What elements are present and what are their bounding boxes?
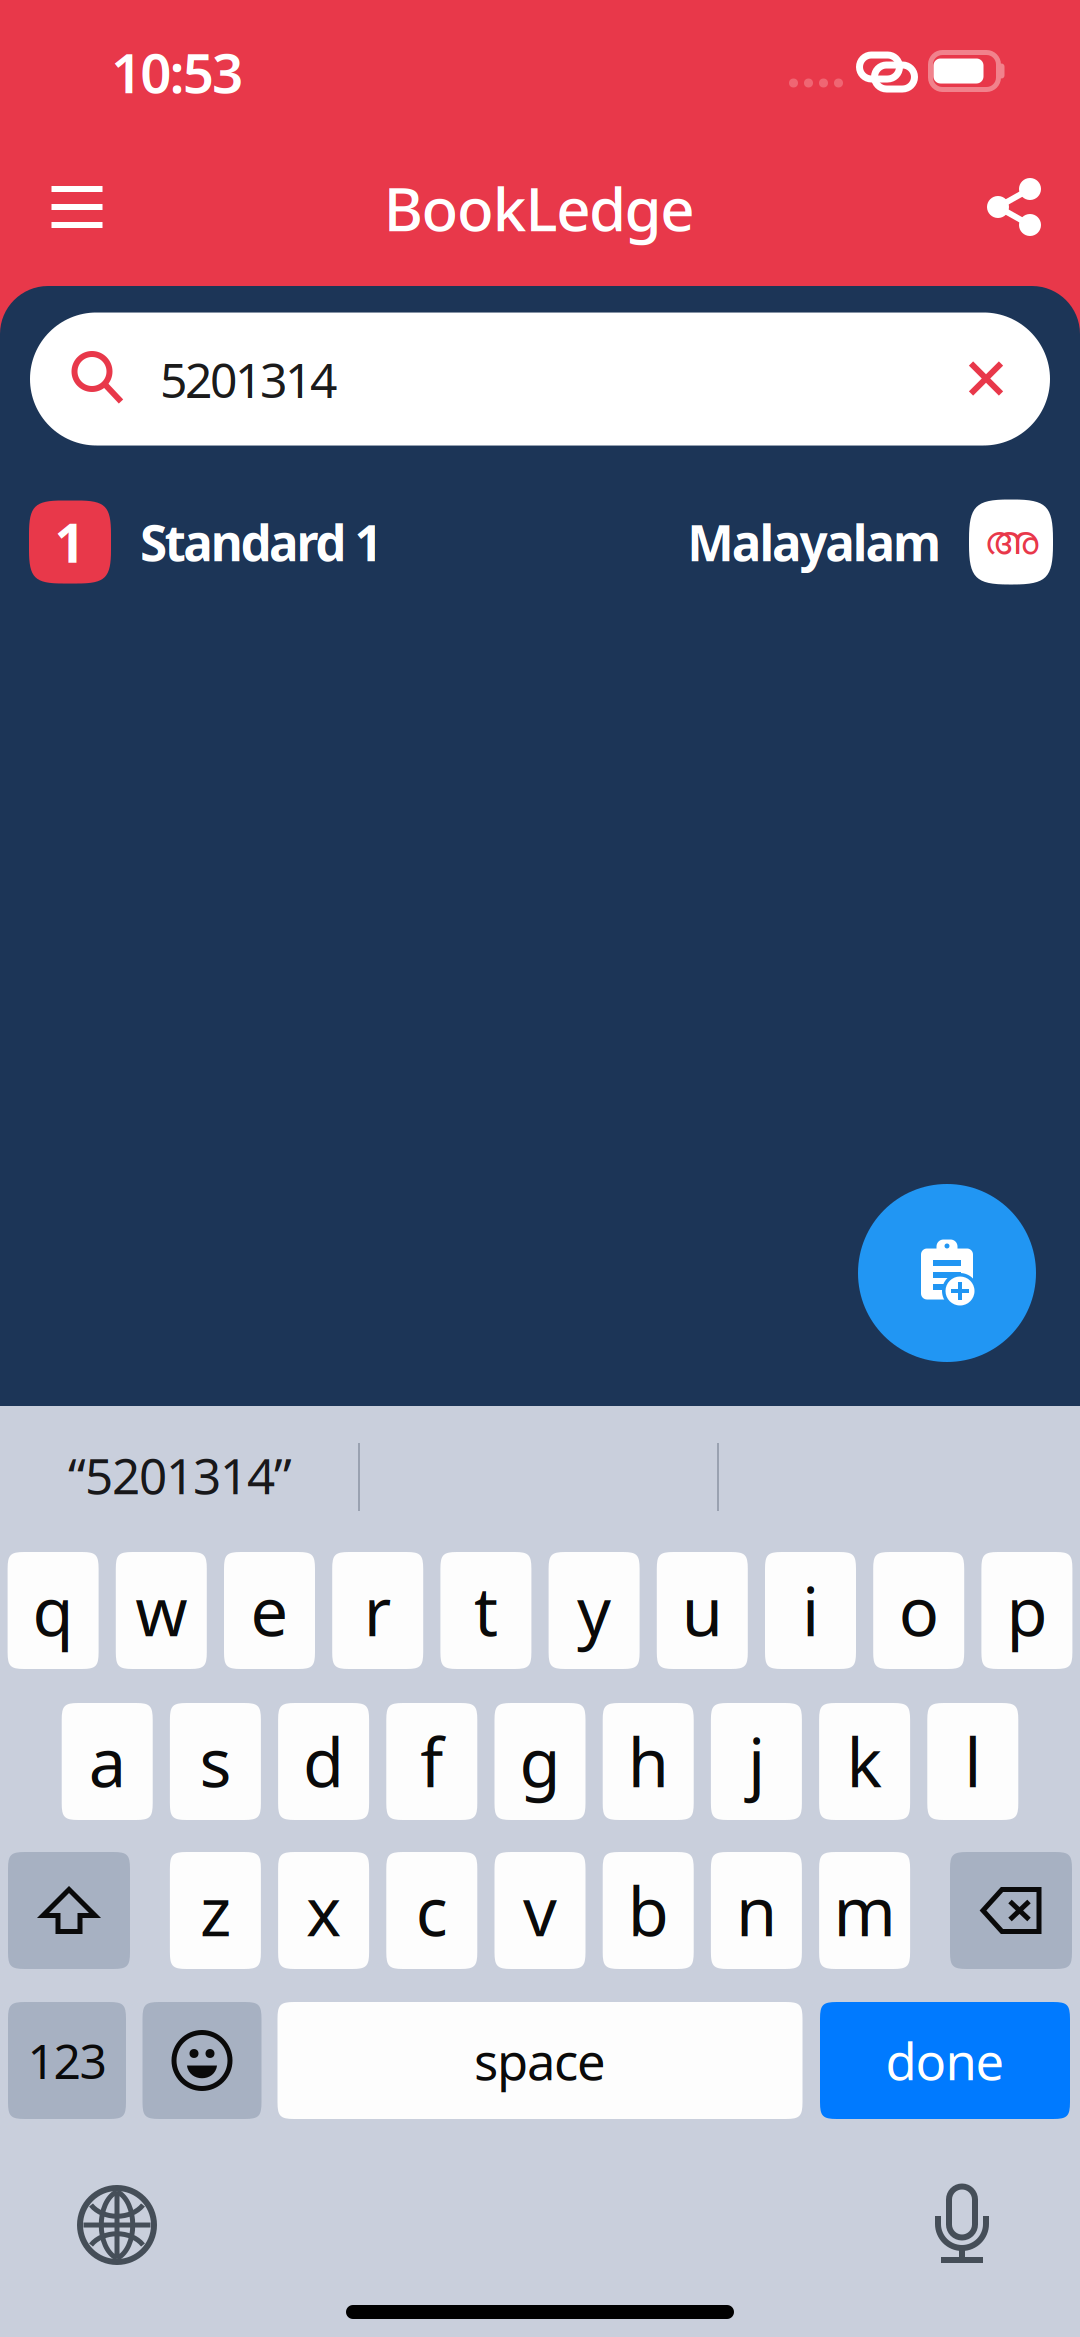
- staticText: done: [885, 2027, 1004, 2094]
- button[interactable]: Emoji: [142, 2002, 261, 2119]
- button[interactable]: done: [820, 2002, 1070, 2119]
- button[interactable]: b: [603, 1852, 694, 1969]
- staticText: z: [200, 1866, 231, 1955]
- staticText: o: [899, 1566, 939, 1655]
- staticText: r: [364, 1566, 392, 1655]
- button[interactable]: x: [278, 1852, 369, 1969]
- button[interactable]: k: [819, 1703, 910, 1820]
- staticText: w: [135, 1566, 187, 1655]
- button[interactable]: m: [819, 1852, 910, 1969]
- button[interactable]: a: [62, 1703, 153, 1820]
- button[interactable]: s: [170, 1703, 261, 1820]
- staticText: g: [519, 1717, 560, 1806]
- staticText: u: [682, 1566, 723, 1655]
- button[interactable]: h: [603, 1703, 694, 1820]
- staticText: s: [199, 1717, 231, 1806]
- staticText: space: [474, 2027, 606, 2094]
- staticText: 1: [54, 507, 85, 577]
- button[interactable]: o: [873, 1552, 964, 1669]
- staticText: c: [416, 1866, 448, 1955]
- staticText: n: [736, 1866, 777, 1955]
- staticText: k: [847, 1717, 883, 1806]
- staticText: m: [834, 1866, 896, 1955]
- staticText: Standard 1: [140, 509, 382, 575]
- staticText: d: [303, 1717, 344, 1806]
- staticText: അ: [984, 522, 1038, 561]
- staticText: y: [577, 1566, 611, 1655]
- button[interactable]: d: [278, 1703, 369, 1820]
- staticText: Malayalam: [687, 509, 941, 575]
- button[interactable]: Add book: [858, 1184, 1036, 1362]
- button[interactable]: e: [224, 1552, 315, 1669]
- button[interactable]: w: [116, 1552, 207, 1669]
- staticText: 10:53: [111, 36, 243, 108]
- button[interactable]: Menu: [34, 164, 120, 250]
- staticText: “5201314”: [68, 1442, 292, 1508]
- button[interactable]: q: [8, 1552, 99, 1669]
- staticText: b: [628, 1866, 669, 1955]
- staticText: t: [474, 1566, 498, 1655]
- button[interactable]: c: [386, 1852, 477, 1969]
- button[interactable]: f: [386, 1703, 477, 1820]
- button[interactable]: l: [927, 1703, 1018, 1820]
- button[interactable]: u: [657, 1552, 748, 1669]
- button[interactable]: 123: [8, 2002, 126, 2119]
- staticText: j: [748, 1717, 765, 1806]
- button[interactable]: r: [332, 1552, 423, 1669]
- button[interactable]: n: [711, 1852, 802, 1969]
- button[interactable]: t: [440, 1552, 531, 1669]
- button[interactable]: Dictate: [912, 2175, 1012, 2275]
- staticText: BookLedge: [384, 168, 694, 248]
- staticText: a: [89, 1717, 126, 1806]
- button[interactable]: i: [765, 1552, 856, 1669]
- staticText: v: [523, 1866, 557, 1955]
- button[interactable]: Clear search: [955, 347, 1017, 409]
- staticText: l: [964, 1717, 981, 1806]
- button[interactable]: v: [494, 1852, 585, 1969]
- button[interactable]: y: [549, 1552, 640, 1669]
- staticText: 123: [27, 2029, 106, 2092]
- staticText: f: [420, 1717, 443, 1806]
- staticText: e: [250, 1566, 288, 1655]
- staticText: i: [802, 1566, 819, 1655]
- staticText: 5201314: [160, 348, 337, 411]
- button[interactable]: z: [170, 1852, 261, 1969]
- button[interactable]: Shift: [8, 1852, 130, 1969]
- button[interactable]: Switch keyboard: [67, 2175, 167, 2275]
- button[interactable]: Delete: [950, 1852, 1072, 1969]
- button[interactable]: j: [711, 1703, 802, 1820]
- staticText: p: [1006, 1566, 1047, 1655]
- button[interactable]: Share: [969, 164, 1055, 250]
- button[interactable]: space: [277, 2002, 802, 2119]
- staticText: x: [306, 1866, 341, 1955]
- button[interactable]: g: [494, 1703, 585, 1820]
- staticText: q: [33, 1566, 74, 1655]
- button[interactable]: p: [981, 1552, 1072, 1669]
- staticText: h: [628, 1717, 669, 1806]
